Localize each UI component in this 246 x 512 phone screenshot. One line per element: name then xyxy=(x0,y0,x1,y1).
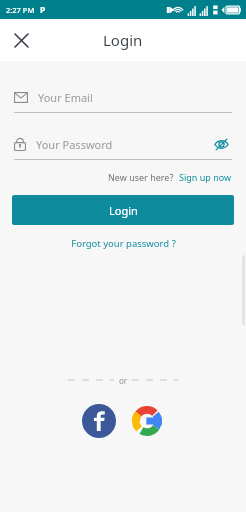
staticText: Login xyxy=(103,30,143,50)
staticText: Sign up now xyxy=(179,171,232,183)
staticText: or xyxy=(119,375,128,386)
staticText: Forgot your password ? xyxy=(71,237,176,250)
button[interactable]: Login xyxy=(12,195,234,225)
staticText: P xyxy=(40,4,46,16)
button[interactable]: Sign up now xyxy=(179,171,232,183)
button[interactable]: Sign in with Google xyxy=(130,404,164,438)
staticText: Login xyxy=(109,203,138,218)
staticText: 2:27 PM xyxy=(6,5,35,15)
button[interactable]: Your Email xyxy=(14,87,232,107)
staticText: Your Email xyxy=(38,90,93,105)
button[interactable]: Sign in with Facebook xyxy=(82,404,116,438)
button[interactable]: Forgot your password ? xyxy=(67,233,180,254)
button[interactable]: Show password xyxy=(210,133,232,155)
staticText: Your Password xyxy=(36,137,210,152)
staticText: New user here? xyxy=(108,171,174,183)
button[interactable]: Your Password xyxy=(14,133,232,155)
button[interactable]: Close xyxy=(6,25,36,55)
